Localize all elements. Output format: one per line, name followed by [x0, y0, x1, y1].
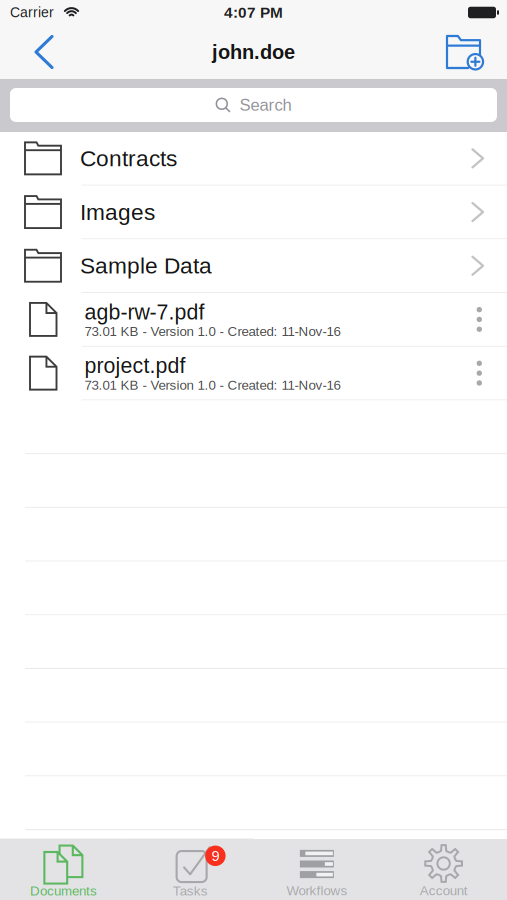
button[interactable]: project.pdf [0, 347, 465, 399]
staticText: 73.01 KB - Version 1.0 - Created: 11-Nov… [84, 324, 340, 339]
staticText: Carrier [10, 5, 54, 20]
button[interactable]: More options [465, 293, 507, 346]
button[interactable]: Back [0, 25, 68, 79]
button[interactable]: More options [465, 347, 507, 399]
staticText: agb-rw-7.pdf [84, 300, 204, 324]
staticText: Sample Data [80, 253, 212, 278]
button[interactable]: Images [0, 186, 507, 239]
button[interactable]: New Folder [431, 25, 507, 79]
button[interactable]: 9 [127, 839, 254, 900]
staticText: 4:07 PM [224, 4, 283, 21]
staticText: Tasks [173, 884, 208, 898]
button[interactable]: Workflows [253, 839, 380, 900]
staticText: project.pdf [84, 354, 185, 378]
staticText: Search [239, 96, 291, 114]
button[interactable]: Documents [0, 839, 127, 900]
button[interactable]: Account [380, 839, 507, 900]
button[interactable]: agb-rw-7.pdf [0, 293, 465, 346]
staticText: Contracts [80, 146, 177, 171]
staticText: 9 [211, 848, 219, 864]
button[interactable]: Sample Data [0, 239, 507, 293]
button[interactable]: Contracts [0, 132, 507, 186]
staticText: john.doe [212, 41, 295, 63]
button[interactable]: Search [0, 79, 507, 132]
staticText: 73.01 KB - Version 1.0 - Created: 11-Nov… [84, 378, 340, 392]
staticText: Workflows [286, 883, 347, 898]
staticText: Account [420, 883, 468, 898]
staticText: Documents [30, 884, 97, 898]
staticText: Images [80, 199, 155, 225]
